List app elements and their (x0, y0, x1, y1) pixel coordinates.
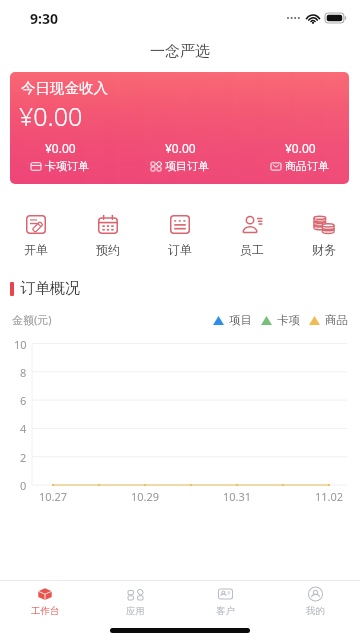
button[interactable]: 应用 (90, 581, 180, 621)
staticText: 预约 (96, 242, 120, 257)
staticText: 卡项 (277, 313, 300, 327)
staticText: 项目订单 (165, 159, 209, 173)
staticText: 客户 (216, 605, 235, 617)
button[interactable]: ¥0.00 (10, 140, 120, 173)
staticText: 今日现金收入 (21, 79, 108, 97)
staticText: 商品 (325, 313, 348, 327)
staticText: 我的 (306, 605, 325, 617)
staticText: 金额(元) (12, 312, 52, 327)
staticText: 9:30 (30, 9, 58, 28)
staticText: 10.31 (223, 489, 252, 504)
staticText: ¥0.00 (165, 140, 196, 156)
staticText: 11.02 (315, 489, 344, 504)
button[interactable]: 工作台 (0, 581, 90, 621)
button[interactable]: 财务 (288, 215, 360, 257)
button[interactable]: 预约 (72, 215, 144, 257)
staticText: 员工 (240, 242, 264, 257)
staticText: 10 (14, 337, 27, 352)
button[interactable]: 今日现金收入 (10, 72, 349, 184)
staticText: 0 (20, 478, 27, 493)
button[interactable]: 客户 (180, 581, 270, 621)
staticText: 6 (20, 393, 27, 408)
staticText: ¥0.00 (285, 140, 316, 156)
staticText: 8 (20, 365, 27, 380)
button[interactable]: ¥0.00 (240, 140, 349, 173)
staticText: 开单 (24, 242, 48, 257)
button[interactable]: 我的 (270, 581, 360, 621)
staticText: 2 (20, 450, 27, 465)
staticText: 项目 (229, 313, 252, 327)
staticText: 工作台 (31, 605, 60, 617)
staticText: 10.29 (131, 489, 160, 504)
staticText: 订单概况 (20, 279, 80, 298)
staticText: 4 (20, 421, 27, 436)
button[interactable]: ¥0.00 (120, 140, 240, 173)
staticText: 10.27 (39, 489, 68, 504)
button[interactable]: 卡项 (261, 313, 300, 327)
button[interactable]: 开单 (0, 215, 72, 257)
button[interactable]: 项目 (213, 313, 252, 327)
button[interactable]: 订单 (144, 215, 216, 257)
staticText: 订单 (168, 242, 192, 257)
staticText: 应用 (126, 605, 145, 617)
button[interactable]: 员工 (216, 215, 288, 257)
staticText: 商品订单 (285, 159, 329, 173)
staticText: ¥0.00 (19, 99, 83, 133)
staticText: 财务 (312, 242, 336, 257)
staticText: 卡项订单 (45, 159, 89, 173)
staticText: ¥0.00 (45, 140, 76, 156)
staticText: 一念严选 (150, 42, 210, 61)
button[interactable]: 商品 (309, 313, 348, 327)
